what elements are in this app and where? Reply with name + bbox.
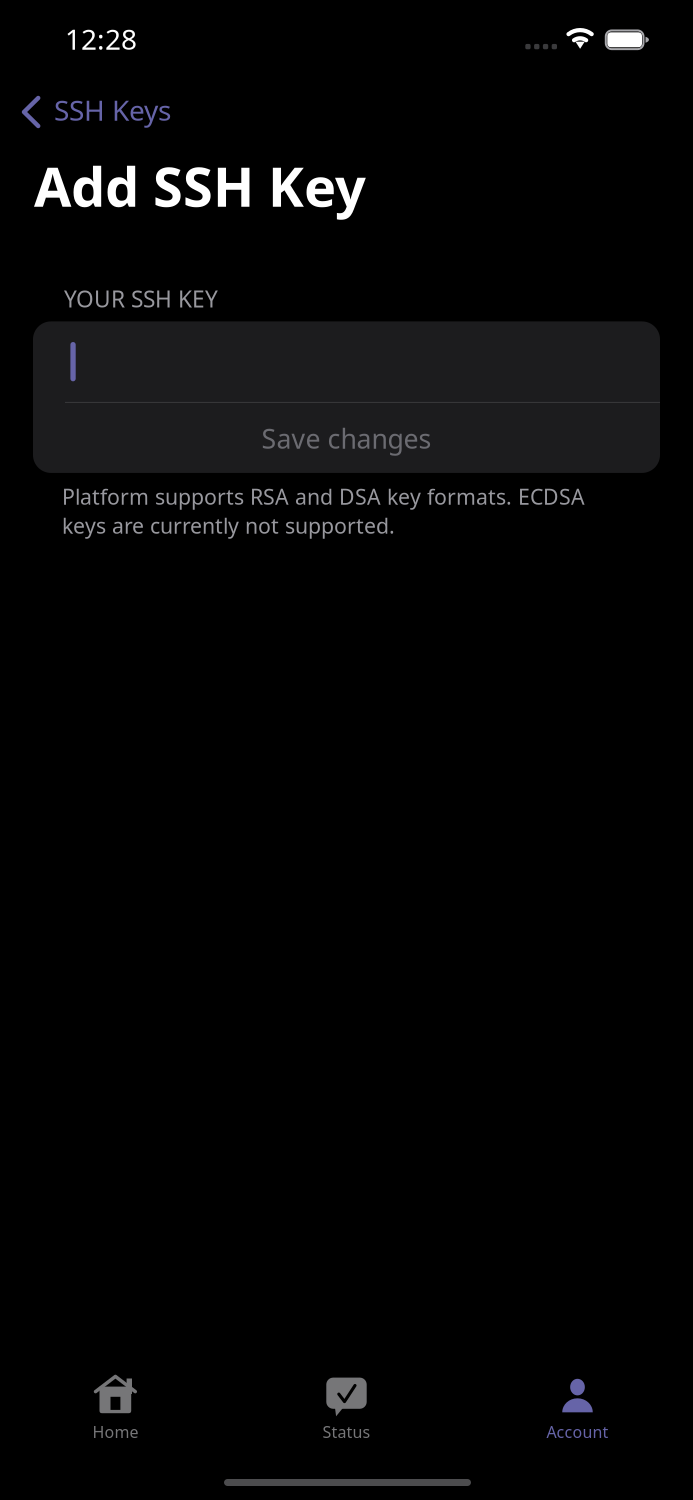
staticText: Status: [322, 1421, 370, 1443]
staticText: Save changes: [261, 420, 431, 457]
staticText: YOUR SSH KEY: [64, 283, 218, 314]
button[interactable]: Account: [462, 1373, 693, 1443]
button[interactable]: Status: [231, 1373, 462, 1443]
button[interactable]: Save changes: [33, 403, 660, 473]
button[interactable]: Home: [0, 1373, 231, 1443]
staticText: 12:28: [65, 20, 137, 58]
button[interactable]: SSH Keys: [0, 90, 191, 134]
staticText: Account: [546, 1421, 608, 1443]
staticText: Home: [92, 1421, 138, 1443]
staticText: SSH Keys: [54, 91, 171, 129]
staticText: Add SSH Key: [34, 149, 366, 222]
staticText: Platform supports RSA and DSA key format…: [62, 482, 585, 540]
